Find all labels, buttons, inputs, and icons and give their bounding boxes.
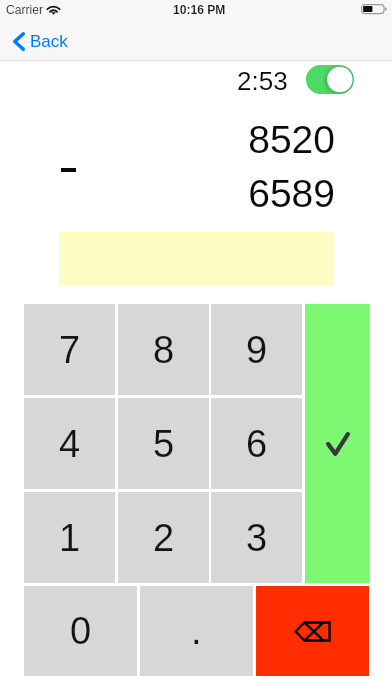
button[interactable]: 4	[24, 398, 115, 489]
staticText: 10:16 PM	[173, 3, 226, 17]
button[interactable]: Check answer	[305, 304, 370, 583]
button[interactable]: 5	[118, 398, 209, 489]
staticText: 4	[59, 423, 81, 465]
staticText: 1	[59, 517, 81, 559]
staticText: Carrier	[6, 3, 43, 17]
staticText: 6	[246, 423, 268, 465]
staticText: 7	[59, 329, 81, 371]
button[interactable]: 8	[118, 304, 209, 395]
button[interactable]: 0	[24, 586, 137, 676]
button[interactable]: 6	[211, 398, 302, 489]
staticText: 2:53	[237, 66, 288, 95]
staticText: 8520	[0, 118, 335, 162]
staticText: Back	[30, 32, 68, 51]
button[interactable]: 1	[24, 492, 115, 583]
button[interactable]: 3	[211, 492, 302, 583]
button[interactable]: 9	[211, 304, 302, 395]
button[interactable]: Delete	[256, 586, 369, 676]
staticText: 3	[246, 517, 268, 559]
staticText: 5	[153, 423, 175, 465]
staticText: 8	[153, 329, 175, 371]
button[interactable]: .	[140, 586, 253, 676]
button[interactable]: 2	[118, 492, 209, 583]
staticText: .	[191, 610, 202, 652]
staticText: 6589	[0, 172, 335, 216]
staticText: 9	[246, 329, 268, 371]
button[interactable]: Back	[4, 28, 80, 55]
staticText: 0	[70, 610, 92, 652]
button[interactable]: 7	[24, 304, 115, 395]
staticText: 2	[153, 517, 175, 559]
button[interactable]: Timer enabled	[306, 65, 354, 94]
